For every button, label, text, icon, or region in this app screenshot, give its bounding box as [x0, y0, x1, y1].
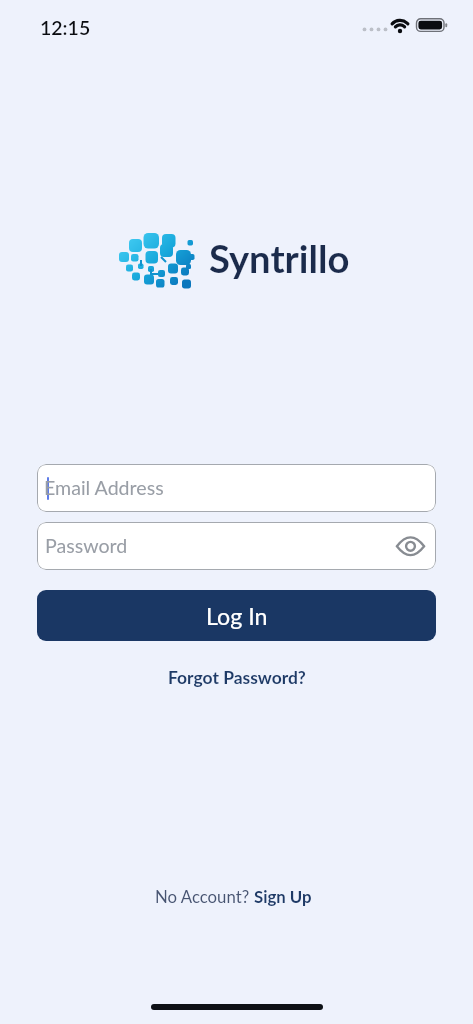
staticText: Password: [45, 534, 128, 558]
staticText: Syntrillo: [209, 235, 350, 281]
staticText: Log In: [206, 602, 268, 630]
staticText: Email Address: [44, 476, 164, 500]
button[interactable]: No Account?: [155, 886, 312, 906]
staticText: Sign Up: [254, 886, 312, 906]
button[interactable]: Forgot Password?: [168, 667, 306, 688]
staticText: 12:15: [40, 16, 91, 37]
staticText: No Account?: [155, 886, 254, 906]
button[interactable]: [396, 535, 425, 557]
button[interactable]: Log In: [37, 590, 436, 641]
button[interactable]: Email Address: [37, 464, 436, 512]
button[interactable]: Password: [37, 522, 436, 570]
